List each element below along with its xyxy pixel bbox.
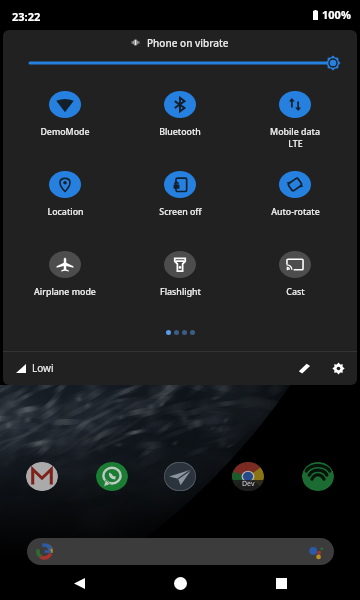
staticText: Auto-rotate	[271, 206, 320, 218]
staticText: Location	[47, 206, 84, 218]
button[interactable]: Back	[63, 567, 95, 599]
button[interactable]: Recents	[265, 567, 297, 599]
button[interactable]: Bluetooth	[132, 91, 228, 149]
staticText: 100%	[322, 7, 351, 22]
button[interactable]: Mobile data	[247, 91, 343, 149]
staticText: Flashlight	[160, 286, 201, 298]
button[interactable]: Cast	[247, 251, 343, 309]
button[interactable]: Home	[164, 567, 196, 599]
staticText: 23:22	[12, 9, 41, 24]
button[interactable]: Airplane mode	[17, 251, 113, 309]
button[interactable]: Flashlight	[132, 251, 228, 309]
button[interactable]: Chrome Dev	[232, 462, 264, 491]
staticText: Screen off	[159, 206, 202, 218]
staticText: Airplane mode	[34, 286, 96, 298]
button[interactable]: WhatsApp	[96, 462, 128, 491]
staticText: Phone on vibrate	[147, 36, 229, 50]
button[interactable]: Screen off	[132, 171, 228, 229]
staticText: Cast	[286, 286, 305, 298]
staticText: Bluetooth	[159, 126, 201, 138]
staticText: LTE	[288, 138, 303, 150]
button[interactable]: Gmail	[26, 462, 58, 491]
staticText: DemoMode	[40, 126, 90, 138]
staticText: Dev	[242, 479, 255, 489]
staticText: Mobile data	[270, 126, 320, 138]
staticText: Lowi	[32, 361, 54, 375]
button[interactable]: Auto-rotate	[247, 171, 343, 229]
button[interactable]: Settings	[327, 357, 349, 379]
button[interactable]: DemoMode	[17, 91, 113, 149]
button[interactable]: Edit	[294, 357, 316, 379]
button[interactable]: Lowi	[16, 355, 54, 381]
button[interactable]	[27, 538, 334, 565]
button[interactable]: Telegram	[164, 462, 196, 491]
button[interactable]: Location	[17, 171, 113, 229]
button[interactable]: Spotify	[302, 462, 334, 491]
